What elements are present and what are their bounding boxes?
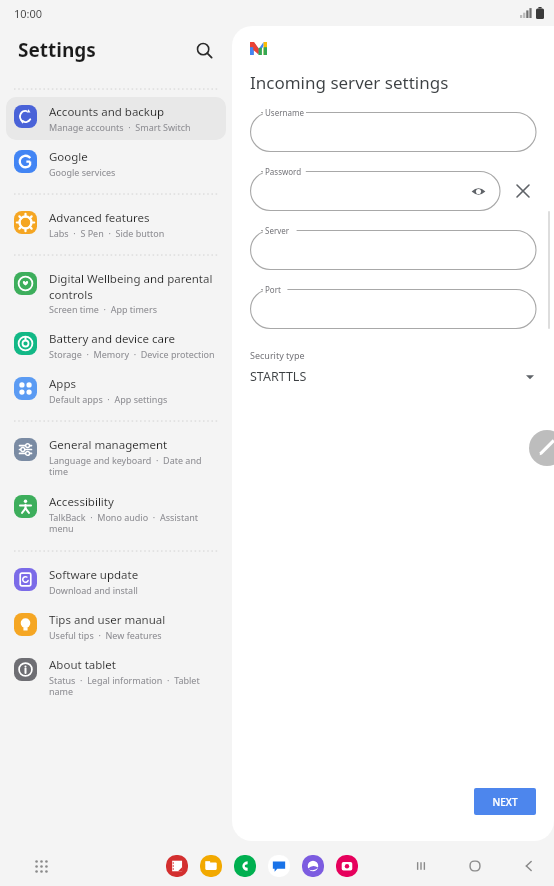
button[interactable]: Software update <box>6 560 226 603</box>
button[interactable]: Home <box>462 853 488 879</box>
staticText: General management <box>49 437 168 453</box>
staticText: Status · Legal information · Tablet name <box>49 674 218 698</box>
staticText: NEXT <box>492 795 518 809</box>
staticText: Download and install <box>49 584 138 596</box>
button[interactable]: Battery and device care <box>6 324 226 367</box>
button[interactable]: Google <box>6 142 226 185</box>
button[interactable]: All apps <box>28 853 54 879</box>
staticText: Language and keyboard · Date and time <box>49 454 218 478</box>
button[interactable]: STARTTLS <box>250 368 536 385</box>
button[interactable]: NEXT <box>474 788 536 815</box>
staticText: Google <box>49 149 88 165</box>
button[interactable]: Recents <box>408 853 434 879</box>
staticText: Accessibility <box>49 494 114 510</box>
staticText: STARTTLS <box>250 368 307 385</box>
button[interactable]: Accessibility <box>6 487 226 542</box>
staticText: Password <box>265 166 302 177</box>
button[interactable]: Back <box>516 853 542 879</box>
button[interactable]: Accounts and backup <box>6 97 226 140</box>
button[interactable]: Apps <box>6 369 226 412</box>
button[interactable]: Clear <box>510 178 536 204</box>
button[interactable]: messages <box>268 855 290 877</box>
button[interactable]: Show password <box>468 181 488 201</box>
button[interactable]: Tips and user manual <box>6 605 226 648</box>
staticText: Advanced features <box>49 210 150 226</box>
staticText: Labs · S Pen · Side button <box>49 227 165 239</box>
staticText: Manage accounts · Smart Switch <box>49 121 191 133</box>
button[interactable]: General management <box>6 430 226 485</box>
button[interactable]: Edit <box>529 430 554 466</box>
button[interactable]: folder <box>200 855 222 877</box>
staticText: Useful tips · New features <box>49 629 162 641</box>
staticText: Incoming server settings <box>250 71 449 94</box>
staticText: Tips and user manual <box>49 612 166 628</box>
button[interactable]: Port <box>250 289 536 329</box>
staticText: Apps <box>49 376 77 392</box>
button[interactable]: Username <box>250 112 536 152</box>
staticText: Settings <box>18 37 96 63</box>
staticText: Security type <box>250 349 305 361</box>
staticText: Digital Wellbeing and parental controls <box>49 271 218 302</box>
staticText: Storage · Memory · Device protection <box>49 348 215 360</box>
staticText: Screen time · App timers <box>49 303 157 315</box>
button[interactable]: camera <box>336 855 358 877</box>
button[interactable]: note <box>166 855 188 877</box>
button[interactable]: phone <box>234 855 256 877</box>
staticText: Google services <box>49 166 116 178</box>
button[interactable]: Digital Wellbeing and parental controls <box>6 264 226 322</box>
staticText: TalkBack · Mono audio · Assistant menu <box>49 511 218 535</box>
staticText: Default apps · App settings <box>49 393 168 405</box>
button[interactable]: Password <box>250 171 500 211</box>
staticText: Server <box>265 225 290 236</box>
button[interactable]: internet <box>302 855 324 877</box>
button[interactable]: About tablet <box>6 650 226 705</box>
staticText: Battery and device care <box>49 331 176 347</box>
staticText: 10:00 <box>14 6 43 21</box>
staticText: Accounts and backup <box>49 104 165 120</box>
staticText: Port <box>265 284 281 295</box>
button[interactable]: Server <box>250 230 536 270</box>
staticText: About tablet <box>49 657 116 673</box>
button[interactable]: Advanced features <box>6 203 226 246</box>
button[interactable]: Search <box>188 34 220 66</box>
staticText: Username <box>265 107 304 118</box>
staticText: Software update <box>49 567 139 583</box>
